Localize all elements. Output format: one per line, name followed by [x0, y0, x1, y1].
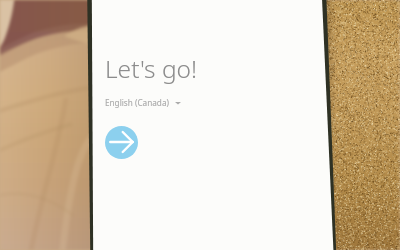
- staticText: English (Canada): [105, 97, 169, 108]
- button[interactable]: Next: [105, 126, 138, 159]
- staticText: Let's go!: [105, 52, 198, 85]
- button[interactable]: English (Canada): [105, 97, 181, 108]
